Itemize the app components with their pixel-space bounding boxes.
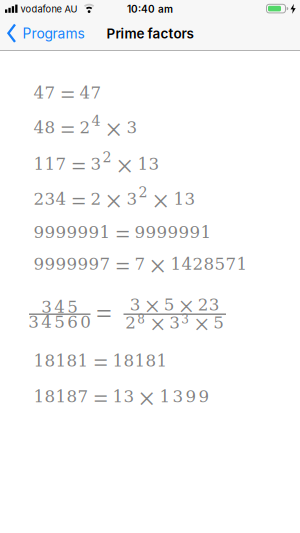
staticText: Prime factors (106, 25, 193, 42)
staticText: 3 × 5 × 23 (130, 295, 220, 316)
staticText: vodafone AU (20, 3, 77, 15)
staticText: = (96, 302, 112, 324)
staticText: Programs (22, 25, 84, 42)
staticText: 48 = 2 4 × 3 (33, 113, 137, 140)
staticText: 47 = 47 (33, 83, 101, 104)
staticText: 2 8 × 3 3 × 5 (125, 313, 224, 334)
staticText: 3 4 5 (41, 297, 78, 317)
staticText: 9999991 = 9999991 (33, 223, 211, 243)
staticText: 18181 = 18181 (33, 351, 167, 372)
staticText: 3 4 5 6 0 (28, 312, 91, 332)
staticText: 18187 = 13 × 1 3 9 9 (33, 387, 209, 409)
staticText: 117 = 3 2 × 13 (33, 149, 159, 177)
staticText: 9999997 = 7 × 1428571 (33, 255, 247, 277)
staticText: 10:40 am (127, 3, 173, 15)
staticText: 234 = 2 × 3 2 × 13 (33, 184, 195, 212)
button[interactable]: Programs (7, 16, 84, 51)
